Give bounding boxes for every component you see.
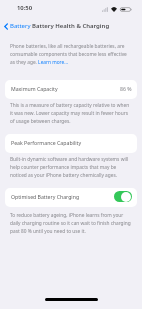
staticText: Battery: [10, 22, 31, 30]
staticText: Built-in dynamic software and hardware s…: [10, 156, 133, 179]
button[interactable]: Maximum Capacity: [5, 80, 137, 99]
staticText: This is a measure of battery capacity re…: [10, 102, 133, 125]
staticText: 10:50: [17, 4, 33, 12]
button[interactable]: Optimised Battery Charging: [5, 188, 137, 207]
staticText: To reduce battery ageing, iPhone learns …: [10, 212, 133, 235]
button[interactable]: Peak Performance Capability: [5, 134, 137, 153]
staticText: Battery Health & Charging: [32, 22, 110, 30]
staticText: Phone batteries, like all rechargeable b…: [10, 43, 133, 66]
button[interactable]: Optimised Battery Charging: [114, 191, 132, 202]
button[interactable]: Back to Battery: [3, 21, 32, 31]
staticText: 86 %: [120, 85, 132, 92]
staticText: Peak Performance Capability: [11, 139, 82, 146]
staticText: Maximum Capacity: [11, 85, 58, 92]
staticText: Optimised Battery Charging: [11, 193, 80, 200]
